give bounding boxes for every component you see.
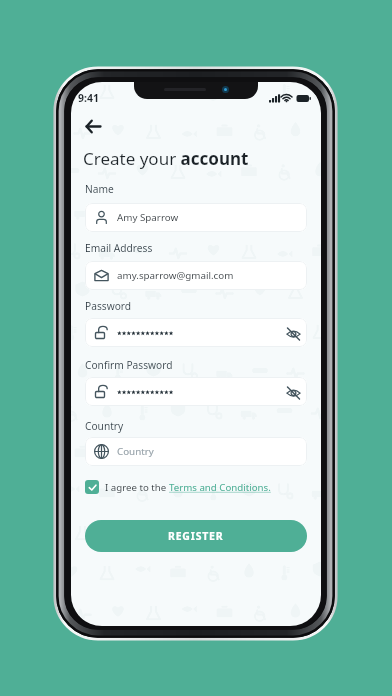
staticText: Create your account xyxy=(83,147,249,170)
staticText: REGISTER xyxy=(168,529,224,543)
staticText: Password xyxy=(85,299,132,313)
staticText: 9:41 xyxy=(78,91,99,105)
button[interactable]: REGISTER xyxy=(85,520,307,552)
staticText: Country xyxy=(117,445,154,458)
button[interactable]: Back xyxy=(77,110,109,142)
button[interactable]: I agree to terms checkbox xyxy=(85,480,99,494)
staticText: Country xyxy=(85,419,124,433)
button[interactable]: Toggle password visibility xyxy=(281,321,305,345)
staticText: Amy Sparrow xyxy=(117,211,179,224)
staticText: amy.sparrow@gmail.com xyxy=(117,269,234,282)
staticText: Name xyxy=(85,182,114,196)
button[interactable]: Amy Sparrow xyxy=(85,203,307,232)
staticText: Email Address xyxy=(85,241,153,255)
button[interactable]: amy.sparrow@gmail.com xyxy=(85,261,307,290)
button[interactable]: Country xyxy=(85,437,307,466)
button[interactable]: Terms and Conditions. xyxy=(169,481,271,494)
staticText: I agree to the xyxy=(105,481,169,494)
staticText: Confirm Password xyxy=(85,358,173,372)
button[interactable]: Toggle password visibility xyxy=(85,377,307,406)
button[interactable]: Toggle password visibility xyxy=(281,380,305,404)
button[interactable]: Toggle password visibility xyxy=(85,318,307,347)
